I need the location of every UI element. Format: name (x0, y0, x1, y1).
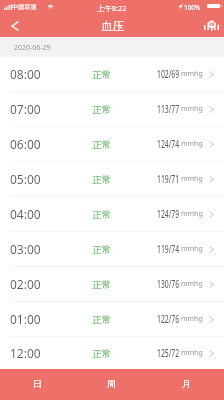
staticText: 中国联通 (12, 3, 37, 11)
staticText: mmhg (181, 139, 203, 149)
staticText: 04:00 (10, 206, 41, 222)
staticText: mmhg (181, 104, 203, 114)
button[interactable]: 06:00 (0, 127, 224, 162)
staticText: mmhg (181, 279, 203, 289)
staticText: 124/79 (157, 207, 180, 221)
button[interactable]: 周 (74, 369, 149, 400)
staticText: 07:00 (10, 101, 41, 117)
button[interactable]: 05:00 (0, 162, 224, 197)
button[interactable]: 日 (0, 369, 74, 400)
button[interactable]: 月 (149, 369, 224, 400)
button[interactable]: 03:00 (0, 232, 224, 267)
staticText: 日 (33, 378, 42, 389)
staticText: 130/76 (157, 277, 180, 291)
staticText: 正常 (92, 174, 111, 186)
staticText: mmhg (181, 348, 203, 358)
staticText: 122/76 (157, 312, 180, 326)
button[interactable]: 12:00 (0, 337, 224, 369)
staticText: 119/71 (157, 172, 180, 186)
staticText: 01:00 (10, 311, 41, 327)
staticText: mmhg (181, 244, 203, 254)
button[interactable]: 04:00 (0, 197, 224, 232)
staticText: 正常 (92, 244, 111, 256)
staticText: 月 (182, 378, 191, 389)
staticText: mmhg (181, 209, 203, 219)
staticText: 113/77 (157, 102, 180, 116)
staticText: 正常 (92, 139, 111, 151)
staticText: 正常 (92, 69, 111, 81)
staticText: 周 (107, 378, 116, 389)
button[interactable]: 07:00 (0, 92, 224, 127)
staticText: mmhg (181, 69, 203, 79)
staticText: 06:00 (10, 136, 41, 152)
button[interactable]: 08:00 (0, 57, 224, 92)
staticText: 血压 (101, 19, 124, 33)
staticText: 正常 (92, 279, 111, 291)
staticText: 124/74 (157, 137, 180, 151)
staticText: 正常 (92, 348, 111, 360)
staticText: 102/69 (157, 67, 180, 81)
staticText: 上午8:22 (97, 3, 127, 13)
staticText: 05:00 (10, 171, 41, 187)
button[interactable]: Back (0, 14, 29, 37)
staticText: 正常 (92, 209, 111, 221)
staticText: 正常 (92, 314, 111, 326)
staticText: 正常 (92, 104, 111, 116)
button[interactable]: Statistics (198, 14, 224, 37)
button[interactable]: 02:00 (0, 267, 224, 302)
staticText: mmhg (181, 314, 203, 324)
staticText: 119/74 (157, 242, 180, 256)
staticText: 2020-06-29 (14, 43, 51, 53)
button[interactable]: 01:00 (0, 302, 224, 337)
staticText: 08:00 (10, 66, 41, 82)
staticText: mmhg (181, 174, 203, 184)
staticText: 02:00 (10, 276, 41, 292)
staticText: 03:00 (10, 241, 41, 257)
staticText: 125/72 (157, 346, 180, 360)
staticText: 100% (184, 3, 201, 12)
staticText: 12:00 (10, 345, 41, 361)
